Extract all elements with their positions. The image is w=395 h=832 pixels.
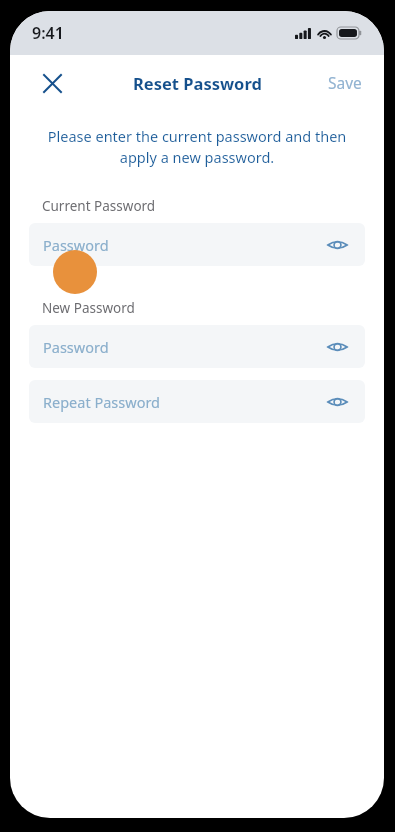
button[interactable]: Save [320,66,370,99]
staticText: New Password [42,299,135,317]
button[interactable]: Show repeated password [322,387,352,417]
staticText: Save [328,72,362,93]
button[interactable]: Password [29,325,365,368]
staticText: Password [43,235,322,255]
button[interactable]: Show current password [322,230,352,260]
button[interactable]: Close [35,66,69,100]
staticText: Password [43,337,322,357]
button[interactable]: Repeat Password [29,380,365,423]
staticText: Current Password [42,197,156,215]
button[interactable]: Show new password [322,332,352,362]
staticText: Repeat Password [43,392,322,412]
staticText: 9:41 [32,22,64,44]
staticText: Reset Password [133,72,262,94]
button[interactable]: Password [29,223,365,266]
staticText: Please enter the current password and th… [40,126,354,168]
